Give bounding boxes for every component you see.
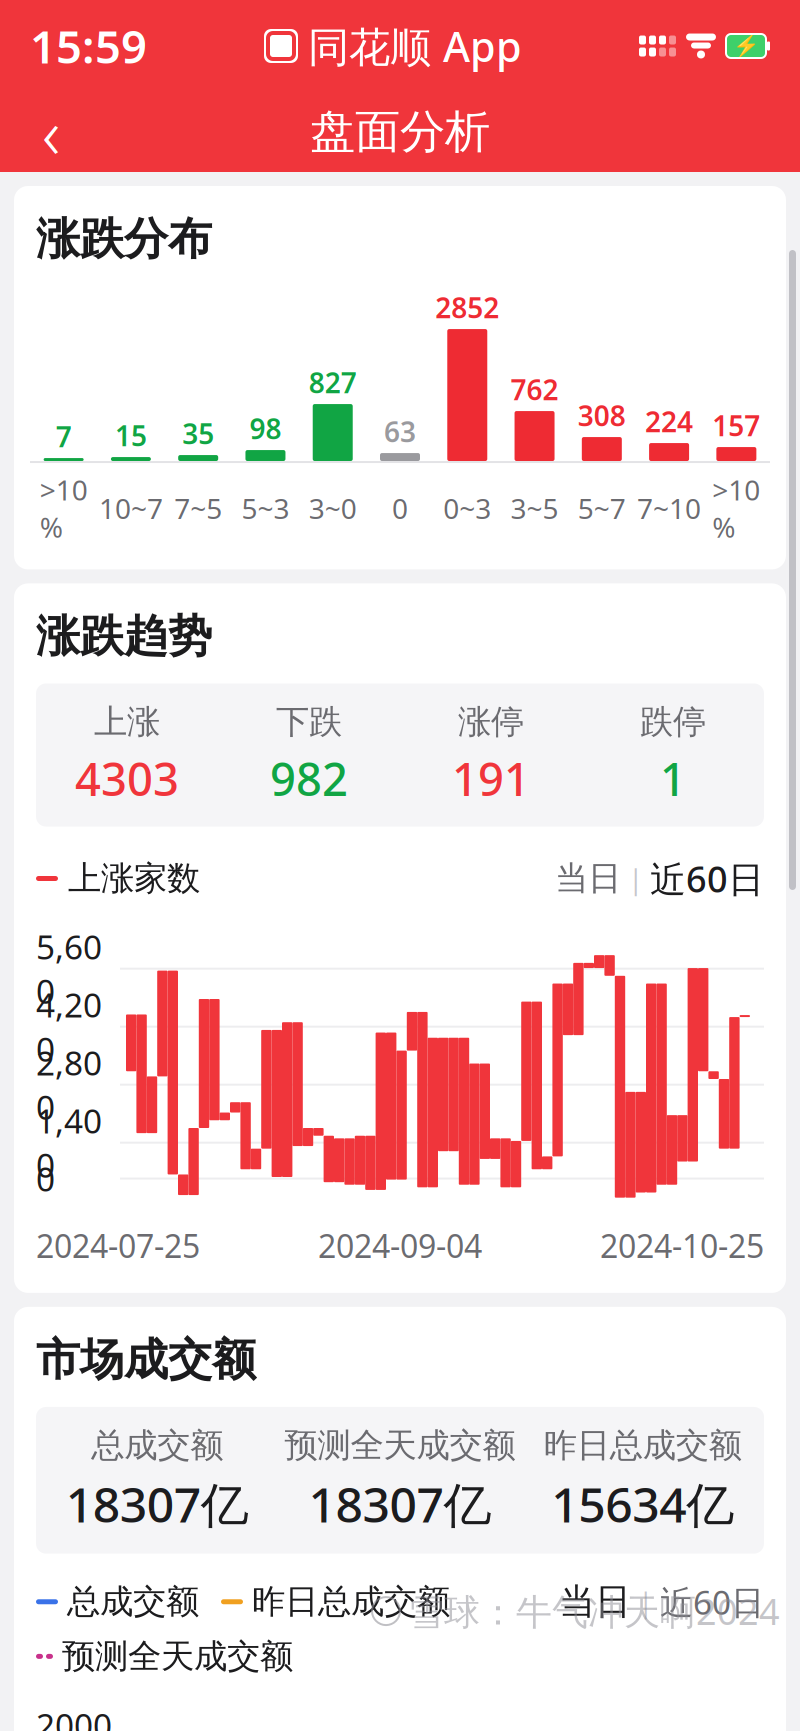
- staticText: 涨跌分布: [36, 212, 212, 266]
- staticText: 上涨: [94, 701, 160, 742]
- staticText: 昨日总成交额: [252, 1581, 450, 1622]
- staticText: ‹: [42, 86, 60, 178]
- staticText: 98: [249, 410, 281, 447]
- staticText: 10~7: [99, 490, 163, 527]
- staticText: 3~5: [510, 490, 558, 527]
- staticText: >10%: [40, 471, 88, 545]
- staticText: 跌停: [640, 701, 706, 742]
- staticText: 18307亿: [308, 1472, 491, 1536]
- staticText: 上涨家数: [68, 858, 200, 899]
- staticText: |: [631, 1583, 660, 1620]
- staticText: 2852: [435, 289, 499, 326]
- button[interactable]: 当日: [559, 1580, 631, 1624]
- staticText: 15634亿: [551, 1472, 734, 1536]
- staticText: 4,200: [36, 982, 102, 1071]
- staticText: 35: [182, 415, 214, 452]
- staticText: 7~10: [637, 490, 701, 527]
- staticText: 1: [660, 748, 686, 809]
- staticText: 近60日: [650, 855, 764, 902]
- staticText: 1,400: [36, 1098, 102, 1187]
- staticText: 191: [452, 748, 530, 809]
- staticText: 近60日: [660, 1580, 764, 1624]
- staticText: 盘面分析: [310, 104, 490, 160]
- staticText: 4303: [75, 748, 179, 809]
- staticText: 20000亿: [36, 1703, 112, 1731]
- staticText: 市场成交额: [36, 1333, 256, 1387]
- staticText: 2024-07-25: [36, 1224, 200, 1267]
- staticText: 昨日总成交额: [544, 1425, 742, 1466]
- staticText: ⚡: [732, 34, 759, 58]
- staticText: 5~3: [241, 490, 289, 527]
- staticText: 224: [645, 403, 693, 440]
- staticText: 预测全天成交额: [284, 1425, 515, 1466]
- staticText: 15:59: [30, 16, 147, 76]
- staticText: 0: [36, 1156, 55, 1201]
- staticText: 总成交额: [91, 1425, 223, 1466]
- staticText: 2024-10-25: [600, 1224, 764, 1267]
- staticText: 3~0: [309, 490, 357, 527]
- staticText: 762: [510, 371, 558, 408]
- staticText: 827: [309, 364, 357, 401]
- staticText: 雪球：牛气冲天啊2024: [408, 1587, 780, 1635]
- staticText: >10%: [712, 471, 760, 545]
- staticText: 7~5: [174, 490, 222, 527]
- staticText: 同花顺 App: [308, 19, 522, 73]
- staticText: 预测全天成交额: [62, 1636, 293, 1677]
- staticText: 0~3: [443, 490, 491, 527]
- staticText: 308: [578, 397, 626, 434]
- staticText: 982: [270, 748, 348, 809]
- staticText: 涨跌趋势: [36, 609, 212, 663]
- button[interactable]: 当日: [555, 858, 621, 899]
- staticText: 当日: [559, 1580, 631, 1624]
- staticText: 15: [115, 417, 147, 454]
- staticText: 总成交额: [67, 1581, 199, 1622]
- staticText: 0: [392, 490, 408, 527]
- staticText: 下跌: [276, 701, 342, 742]
- staticText: 5~7: [578, 490, 626, 527]
- staticText: 涨停: [458, 701, 524, 742]
- staticText: 5,600: [36, 924, 102, 1013]
- staticText: |: [621, 860, 650, 897]
- staticText: 2024-09-04: [318, 1224, 482, 1267]
- staticText: 当日: [555, 858, 621, 899]
- staticText: 157: [712, 407, 760, 444]
- staticText: 7: [56, 418, 72, 455]
- staticText: 63: [384, 413, 416, 450]
- button[interactable]: 近60日: [650, 855, 764, 902]
- staticText: 2,800: [36, 1040, 102, 1129]
- staticText: 18307亿: [66, 1472, 249, 1536]
- button[interactable]: 近60日: [660, 1580, 764, 1624]
- button[interactable]: Back: [16, 97, 86, 167]
